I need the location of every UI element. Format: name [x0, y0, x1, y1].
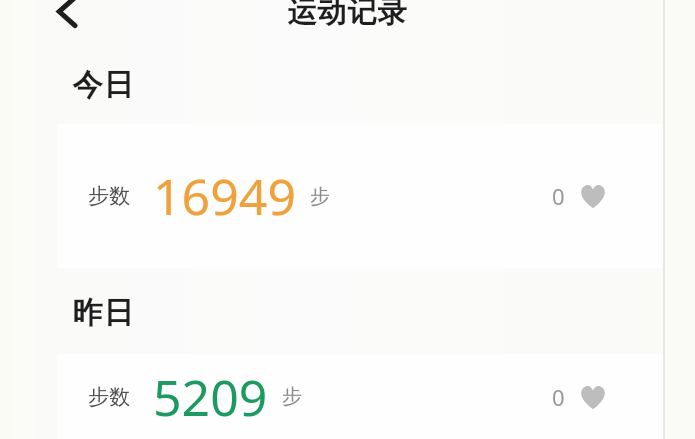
staticText: 今日: [72, 66, 134, 104]
button[interactable]: Like: [579, 182, 607, 210]
button[interactable]: 步数: [57, 354, 663, 439]
staticText: 步数: [88, 183, 130, 209]
staticText: 0: [552, 181, 565, 211]
staticText: 昨日: [72, 294, 134, 332]
staticText: 步: [282, 384, 302, 409]
button[interactable]: Back: [46, 0, 90, 30]
staticText: 步: [310, 184, 330, 209]
staticText: 5209: [153, 363, 268, 431]
staticText: 步数: [88, 384, 130, 410]
staticText: 16949: [153, 162, 296, 230]
button[interactable]: Like: [579, 383, 607, 411]
staticText: 运动记录: [0, 0, 695, 31]
button[interactable]: 步数: [57, 124, 663, 268]
staticText: 0: [552, 382, 565, 412]
